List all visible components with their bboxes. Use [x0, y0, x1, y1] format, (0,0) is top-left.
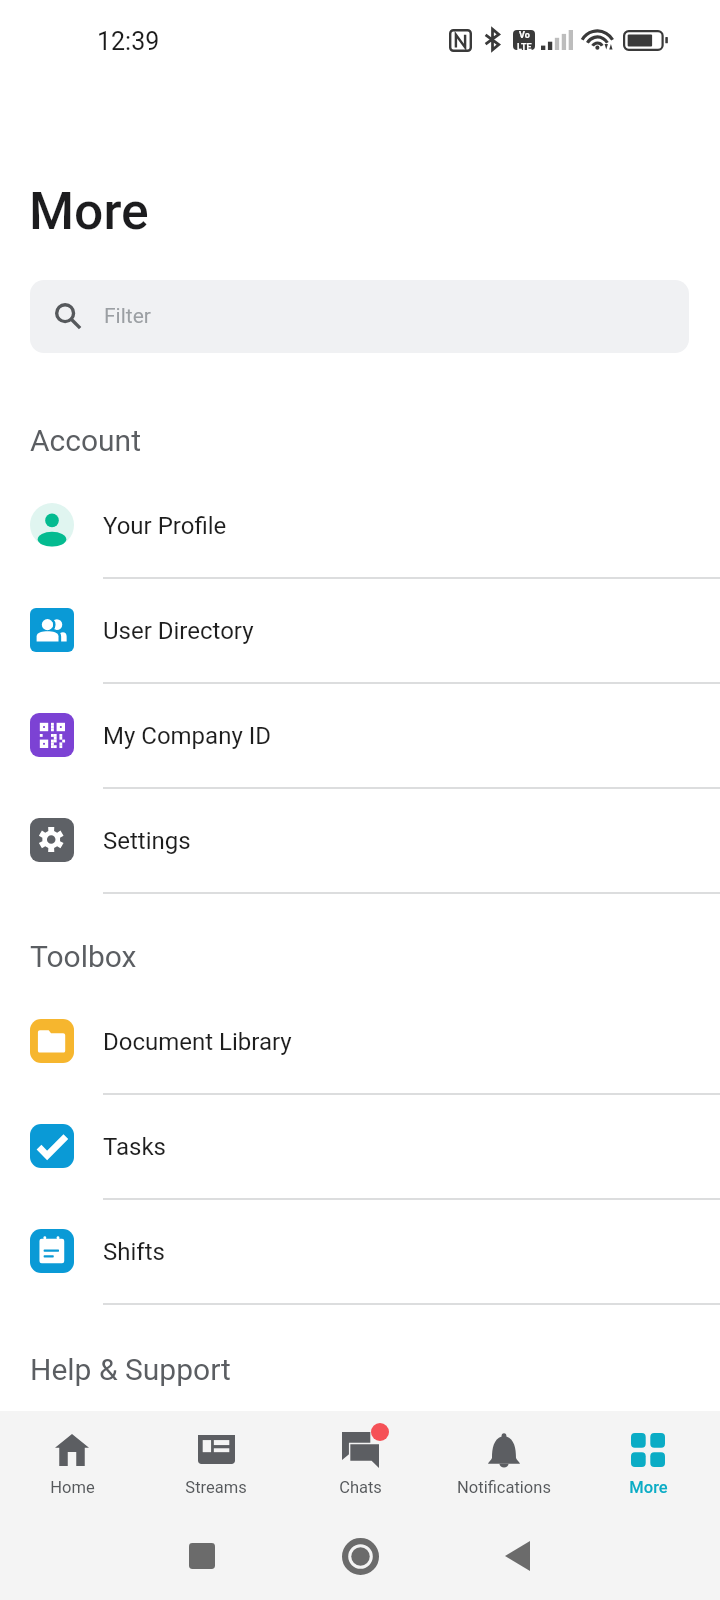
button[interactable]: Chats	[288, 1411, 432, 1512]
staticText: Document Library	[103, 1028, 292, 1056]
staticText: Account	[30, 423, 142, 458]
staticText: Filter	[104, 304, 151, 329]
staticText: LTE	[517, 42, 532, 50]
button[interactable]: Streams	[144, 1411, 288, 1512]
staticText: Your Profile	[103, 512, 227, 540]
staticText: Vo	[519, 30, 530, 41]
staticText: Streams	[185, 1478, 247, 1497]
button[interactable]: Filter	[30, 280, 689, 353]
button[interactable]: Tasks	[0, 1095, 720, 1200]
button[interactable]: Home	[0, 1411, 144, 1512]
staticText: Settings	[103, 827, 191, 855]
staticText: Notifications	[457, 1478, 551, 1497]
button[interactable]: More	[576, 1411, 720, 1512]
button[interactable]: Recent apps	[174, 1512, 230, 1600]
staticText: Home	[50, 1478, 95, 1497]
staticText: My Company ID	[103, 722, 271, 750]
button[interactable]: Settings	[0, 789, 720, 894]
staticText: More	[29, 181, 149, 241]
button[interactable]: My Company ID	[0, 684, 720, 789]
staticText: More	[629, 1478, 668, 1497]
button[interactable]: User Directory	[0, 579, 720, 684]
button[interactable]: Back	[489, 1512, 545, 1600]
staticText: User Directory	[103, 617, 254, 645]
staticText: Shifts	[103, 1238, 165, 1266]
button[interactable]: Notifications	[432, 1411, 576, 1512]
staticText: 12:39	[97, 27, 160, 56]
button[interactable]: Shifts	[0, 1200, 720, 1305]
staticText: Toolbox	[30, 939, 137, 974]
button[interactable]: Your Profile	[0, 474, 720, 579]
staticText: Help & Support	[30, 1352, 231, 1387]
button[interactable]: Document Library	[0, 990, 720, 1095]
button[interactable]: Home	[332, 1512, 388, 1600]
staticText: Chats	[339, 1478, 382, 1497]
staticText: Tasks	[103, 1133, 166, 1161]
